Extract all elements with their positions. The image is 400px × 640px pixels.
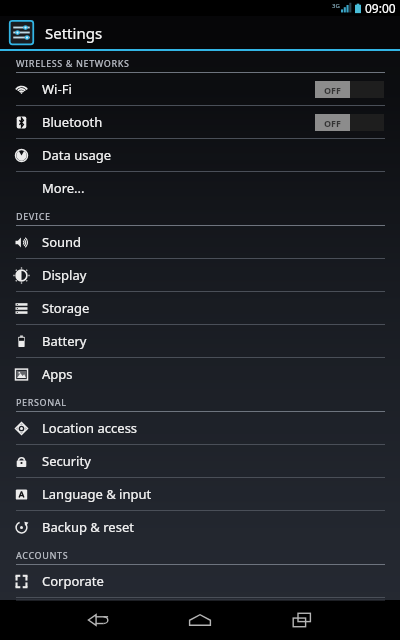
- staticText: OFF: [324, 84, 342, 96]
- button[interactable]: Recent apps: [278, 600, 326, 640]
- staticText: Sound: [42, 233, 82, 251]
- button[interactable]: Settings: [0, 16, 400, 49]
- button[interactable]: Apps: [0, 358, 400, 390]
- button[interactable]: Display: [0, 259, 400, 291]
- staticText: PERSONAL: [16, 396, 67, 408]
- button[interactable]: Location access: [0, 412, 400, 444]
- staticText: More...: [42, 179, 85, 197]
- button[interactable]: Battery: [0, 325, 400, 357]
- staticText: WIRELESS & NETWORKS: [16, 57, 130, 69]
- button[interactable]: Backup & reset: [0, 511, 400, 543]
- staticText: Wi-Fi: [42, 80, 72, 98]
- staticText: ACCOUNTS: [16, 549, 69, 561]
- button[interactable]: Language & input: [0, 478, 400, 510]
- staticText: Location access: [42, 419, 138, 437]
- staticText: Settings: [45, 23, 103, 43]
- staticText: Data usage: [42, 146, 112, 164]
- button[interactable]: Security: [0, 445, 400, 477]
- staticText: Apps: [42, 365, 73, 383]
- button[interactable]: Back: [74, 600, 122, 640]
- staticText: 09:00: [365, 0, 396, 16]
- staticText: Security: [42, 452, 91, 470]
- staticText: 3G: [332, 2, 340, 10]
- button[interactable]: OFF: [315, 81, 384, 98]
- button[interactable]: Data usage: [0, 139, 400, 171]
- staticText: OFF: [324, 117, 342, 129]
- button[interactable]: Home: [176, 600, 224, 640]
- staticText: Storage: [42, 299, 90, 317]
- button[interactable]: Corporate: [0, 565, 400, 597]
- button[interactable]: Sound: [0, 226, 400, 258]
- button[interactable]: Storage: [0, 292, 400, 324]
- staticText: Display: [42, 266, 87, 284]
- staticText: Language & input: [42, 485, 152, 503]
- button[interactable]: OFF: [315, 114, 384, 131]
- staticText: Bluetooth: [42, 113, 103, 131]
- button[interactable]: More...: [0, 172, 400, 204]
- staticText: DEVICE: [16, 210, 51, 222]
- staticText: Backup & reset: [42, 518, 134, 536]
- button[interactable]: Wi-Fi: [0, 73, 400, 105]
- staticText: Battery: [42, 332, 87, 350]
- button[interactable]: Bluetooth: [0, 106, 400, 138]
- staticText: Corporate: [42, 572, 104, 590]
